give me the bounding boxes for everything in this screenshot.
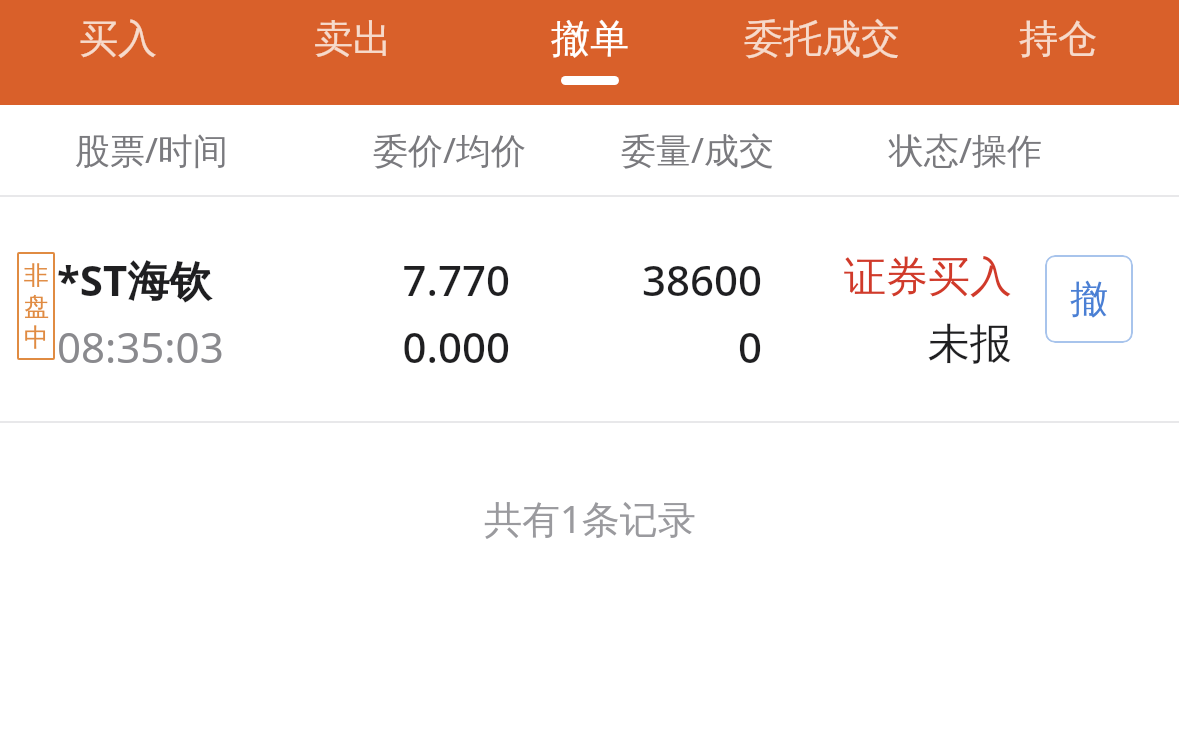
button[interactable]: 持仓: [943, 0, 1173, 105]
staticText: 撤单: [551, 14, 629, 63]
staticText: 08:35:03: [57, 318, 224, 375]
staticText: 未报: [928, 318, 1012, 371]
button[interactable]: 撤单: [475, 0, 705, 105]
staticText: 非: [24, 260, 49, 291]
staticText: *ST海钦: [57, 251, 212, 308]
staticText: 0.000: [402, 318, 510, 375]
button[interactable]: 委托成交: [707, 0, 937, 105]
staticText: 股票/时间: [75, 126, 229, 174]
button[interactable]: 买入: [3, 0, 233, 105]
staticText: 委价/均价: [373, 126, 527, 174]
staticText: 中: [24, 322, 49, 353]
staticText: 委托成交: [744, 14, 900, 63]
staticText: 撤: [1070, 275, 1108, 323]
staticText: 盘: [24, 291, 49, 322]
staticText: 证券买入: [844, 251, 1012, 304]
staticText: 卖出: [314, 14, 392, 63]
staticText: 38600: [641, 251, 762, 308]
staticText: 买入: [79, 14, 157, 63]
staticText: 委量/成交: [621, 126, 775, 174]
staticText: 持仓: [1019, 14, 1097, 63]
staticText: 0: [737, 318, 762, 375]
staticText: 状态/操作: [889, 126, 1043, 174]
staticText: 7.770: [402, 251, 510, 308]
button[interactable]: 非: [0, 197, 1179, 421]
button[interactable]: 卖出: [238, 0, 468, 105]
button[interactable]: 撤: [1045, 255, 1133, 343]
staticText: 共有1条记录: [484, 492, 696, 544]
